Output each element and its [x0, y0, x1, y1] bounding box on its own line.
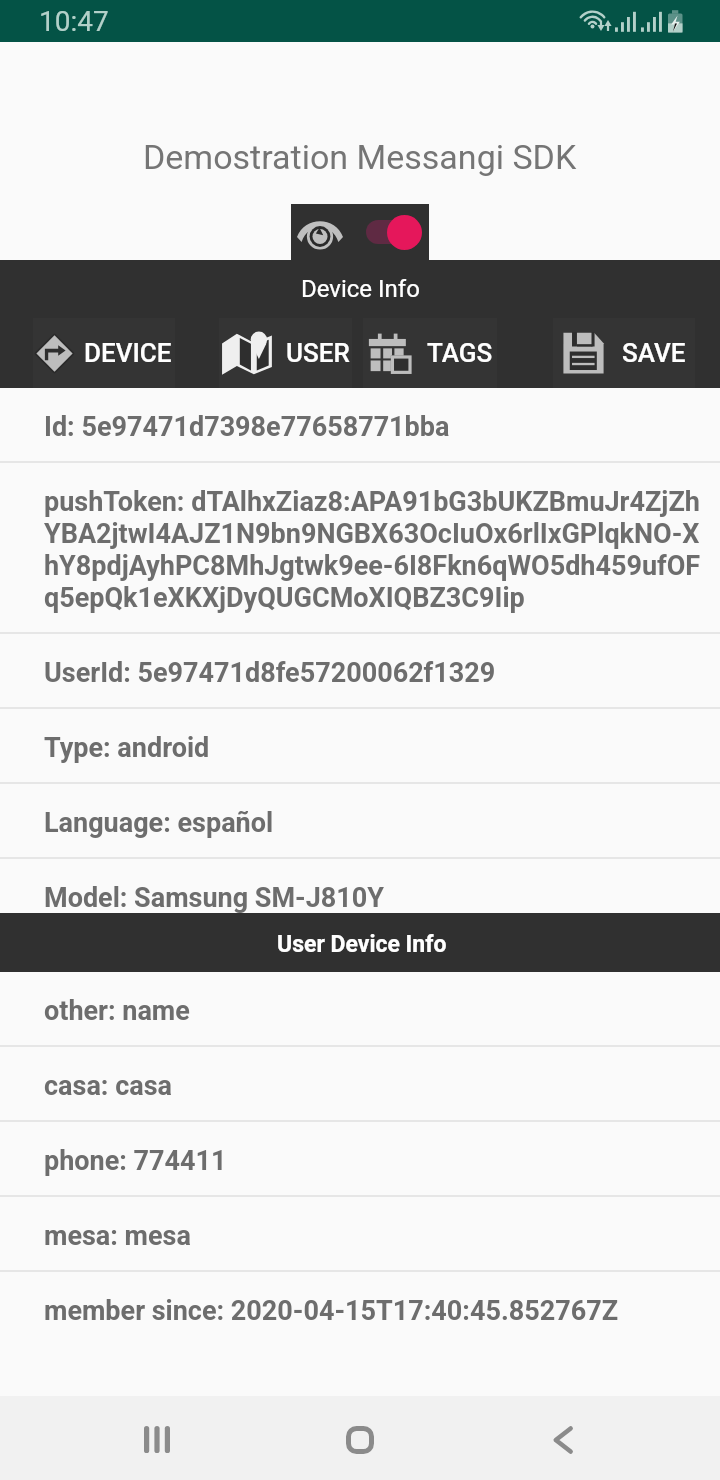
staticText: User Device Info	[277, 931, 447, 958]
staticText: 10:47	[39, 5, 109, 38]
button[interactable]: mesa: mesa	[0, 1197, 720, 1270]
button[interactable]: DEVICE	[33, 318, 175, 388]
staticText: Type: android	[44, 732, 210, 764]
button[interactable]: member since: 2020-04-15T17:40:45.852767…	[0, 1272, 720, 1345]
button[interactable]: pushToken: dTAlhxZiaz8:APA91bG3bUKZBmuJr…	[0, 463, 720, 632]
button[interactable]: other: name	[0, 972, 720, 1045]
staticText: UserId: 5e97471d8fe57200062f1329	[44, 657, 496, 689]
button[interactable]: Back	[461, 1399, 664, 1480]
staticText: Language: español	[44, 807, 274, 839]
button[interactable]: Type: android	[0, 709, 720, 782]
staticText: phone: 774411	[44, 1145, 227, 1177]
button[interactable]: casa: casa	[0, 1047, 720, 1120]
staticText: member since: 2020-04-15T17:40:45.852767…	[44, 1295, 619, 1327]
button[interactable]: Home	[258, 1399, 461, 1480]
staticText: mesa: mesa	[44, 1220, 191, 1252]
staticText: Id: 5e97471d7398e77658771bba	[44, 411, 450, 443]
staticText: TAGS	[427, 338, 493, 368]
staticText: SAVE	[622, 338, 686, 368]
button[interactable]: TAGS	[363, 318, 497, 388]
staticText: USER	[286, 338, 350, 368]
button[interactable]: Id: 5e97471d7398e77658771bba	[0, 388, 720, 461]
staticText: Demostration Messangi SDK	[143, 137, 577, 177]
staticText: pushToken: dTAlhxZiaz8:APA91bG3bUKZBmuJr…	[44, 486, 701, 614]
button[interactable]: USER	[219, 318, 352, 388]
staticText: DEVICE	[84, 338, 172, 368]
button[interactable]: UserId: 5e97471d8fe57200062f1329	[0, 634, 720, 707]
button[interactable]: Recents	[56, 1399, 258, 1480]
staticText: Model: Samsung SM-J810Y	[44, 882, 385, 913]
staticText: other: name	[44, 995, 190, 1027]
button[interactable]: SAVE	[553, 318, 695, 388]
staticText: Device Info	[301, 275, 420, 303]
button[interactable]: phone: 774411	[0, 1122, 720, 1195]
staticText: casa: casa	[44, 1070, 172, 1102]
button[interactable]: Toggle visibility	[291, 204, 429, 260]
button[interactable]: Language: español	[0, 784, 720, 857]
button[interactable]: Model: Samsung SM-J810Y	[0, 859, 720, 913]
